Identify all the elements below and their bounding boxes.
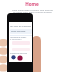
button[interactable] bbox=[10, 29, 32, 34]
staticText: My day at a glance bbox=[9, 24, 32, 27]
staticText: Good morning bbox=[11, 30, 26, 33]
staticText: Take advantage of every app feature to m… bbox=[12, 8, 53, 14]
staticText: Upcoming today bbox=[10, 36, 27, 39]
staticText: Home bbox=[25, 1, 39, 7]
staticText: Shortcuts for you bbox=[10, 52, 27, 55]
staticText: 3 reminders bbox=[10, 38, 22, 41]
